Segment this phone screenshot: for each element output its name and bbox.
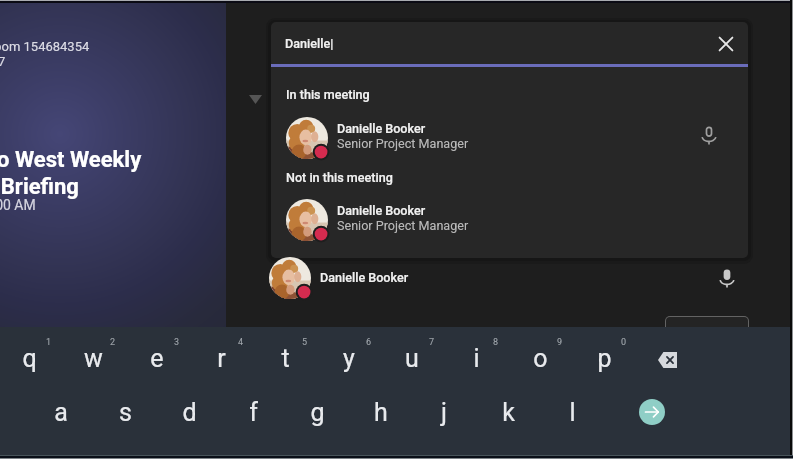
staticText: j bbox=[441, 398, 447, 427]
button[interactable]: u bbox=[382, 338, 442, 378]
button[interactable]: y bbox=[319, 338, 379, 378]
staticText: p bbox=[597, 344, 612, 373]
button[interactable]: f bbox=[223, 392, 283, 432]
staticText: 4 bbox=[238, 337, 244, 348]
staticText: 5 bbox=[302, 337, 308, 348]
button[interactable]: Clear search bbox=[708, 26, 744, 62]
button[interactable]: Danielle Booker bbox=[271, 199, 748, 247]
staticText: 7 bbox=[429, 337, 435, 348]
staticText: h bbox=[374, 398, 388, 427]
staticText: 6 bbox=[366, 337, 372, 348]
staticText: Not in this meeting bbox=[286, 170, 393, 185]
staticText: 3 bbox=[174, 337, 180, 348]
staticText: k bbox=[502, 398, 515, 427]
button[interactable]: w bbox=[63, 338, 123, 378]
staticText: 10:00 AM bbox=[0, 197, 36, 213]
button[interactable]: k bbox=[478, 392, 538, 432]
staticText: Sales Briefing bbox=[0, 174, 79, 200]
staticText: Danielle| bbox=[285, 36, 334, 51]
button[interactable]: e bbox=[127, 338, 187, 378]
button[interactable]: i bbox=[446, 338, 506, 378]
button[interactable]: t bbox=[255, 338, 315, 378]
button[interactable]: Expand participants bbox=[244, 88, 266, 110]
staticText: Danielle Booker bbox=[337, 203, 426, 218]
button[interactable]: Backspace bbox=[638, 340, 698, 380]
button[interactable]: Danielle Booker bbox=[262, 256, 748, 300]
staticText: y bbox=[343, 344, 355, 373]
button[interactable]: Mute participant bbox=[691, 117, 727, 153]
staticText: d bbox=[182, 398, 197, 427]
button[interactable]: p bbox=[574, 338, 634, 378]
staticText: Senior Project Manager bbox=[337, 218, 469, 233]
staticText: 8 bbox=[493, 337, 499, 348]
staticText: 1 bbox=[46, 337, 52, 348]
staticText: i bbox=[473, 344, 480, 373]
button[interactable]: r bbox=[191, 338, 251, 378]
staticText: t bbox=[281, 344, 290, 373]
staticText: s bbox=[119, 398, 132, 427]
staticText: r bbox=[217, 344, 226, 373]
button[interactable]: q bbox=[0, 338, 59, 378]
staticText: Senior Project Manager bbox=[337, 136, 469, 151]
button[interactable]: Microphone bbox=[709, 260, 745, 296]
staticText: 0 bbox=[621, 337, 627, 348]
staticText: Contoso West Weekly bbox=[0, 147, 142, 173]
staticText: 2 bbox=[110, 337, 116, 348]
staticText: g bbox=[310, 398, 325, 427]
staticText: Danielle Booker bbox=[320, 270, 409, 285]
staticText: Danielle Booker bbox=[337, 121, 426, 136]
staticText: q bbox=[22, 344, 37, 373]
staticText: f bbox=[249, 398, 258, 427]
button[interactable]: g bbox=[287, 392, 347, 432]
button[interactable]: j bbox=[414, 392, 474, 432]
staticText: e bbox=[150, 344, 164, 373]
staticText: 9 bbox=[557, 337, 563, 348]
button[interactable]: l bbox=[542, 392, 602, 432]
staticText: w bbox=[84, 344, 103, 373]
staticText: l bbox=[569, 398, 576, 427]
button[interactable]: s bbox=[95, 392, 155, 432]
staticText: In this meeting bbox=[286, 87, 370, 102]
button[interactable]: h bbox=[351, 392, 411, 432]
button[interactable]: a bbox=[31, 392, 91, 432]
staticText: o bbox=[533, 344, 548, 373]
button[interactable] bbox=[665, 316, 749, 342]
staticText: u bbox=[405, 344, 419, 373]
button[interactable]: Enter bbox=[639, 399, 665, 425]
staticText: 1277 bbox=[0, 54, 6, 69]
staticText: a bbox=[54, 398, 68, 427]
staticText: Conf room 154684354 bbox=[0, 39, 90, 54]
button[interactable]: o bbox=[510, 338, 570, 378]
button[interactable]: Danielle Booker bbox=[271, 117, 748, 165]
button[interactable]: d bbox=[159, 392, 219, 432]
